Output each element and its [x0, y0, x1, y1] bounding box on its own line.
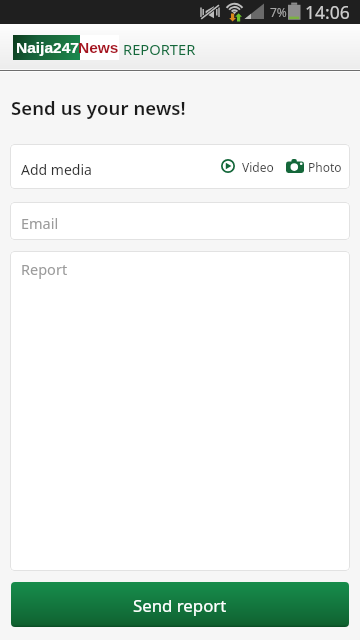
- staticText: 7%: [270, 4, 287, 20]
- staticText: Video: [242, 159, 274, 175]
- button[interactable]: Add media: [10, 144, 350, 189]
- staticText: Report: [21, 259, 68, 279]
- staticText: Send us your news!: [11, 95, 186, 120]
- staticText: Photo: [308, 159, 342, 175]
- button[interactable]: Video: [219, 151, 285, 182]
- button[interactable]: Report: [10, 251, 350, 571]
- staticText: News: [78, 39, 119, 56]
- staticText: Add media: [21, 160, 92, 179]
- button[interactable]: REPORTER: [123, 39, 196, 59]
- button[interactable]: Email: [10, 202, 350, 240]
- staticText: 14:06: [305, 0, 350, 24]
- staticText: Send report: [133, 594, 227, 617]
- staticText: Naija247: [16, 39, 79, 56]
- button[interactable]: Send report: [11, 582, 349, 627]
- button[interactable]: Naija247News home: [13, 35, 119, 60]
- button[interactable]: Photo: [284, 151, 350, 182]
- staticText: Email: [21, 213, 59, 233]
